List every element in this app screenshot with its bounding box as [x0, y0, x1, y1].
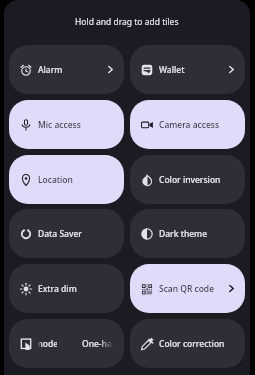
staticText: Wallet [159, 64, 226, 76]
staticText: Color inversion [159, 174, 234, 186]
button[interactable]: Wallet [130, 45, 245, 94]
button[interactable]: Data Saver [9, 209, 124, 258]
staticText: Camera access [159, 119, 234, 131]
staticText: Alarm [38, 64, 105, 76]
staticText: Scan QR code [159, 283, 226, 295]
staticText: Hold and drag to add tiles [75, 16, 179, 28]
button[interactable]: Color inversion [130, 155, 245, 204]
button[interactable]: Scan QR code [130, 264, 245, 313]
button[interactable]: Dark theme [130, 209, 245, 258]
button[interactable]: Extra dim [9, 264, 124, 313]
button[interactable]: Mic access [9, 100, 124, 149]
staticText: Dark theme [159, 228, 234, 240]
button[interactable]: Color correction [130, 319, 245, 368]
button[interactable]: Alarm [9, 45, 124, 94]
button[interactable]: Location [9, 155, 124, 204]
staticText: One-handed mode [82, 338, 113, 350]
staticText: Extra dim [38, 283, 113, 295]
staticText: Location [38, 174, 113, 186]
staticText: Data Saver [38, 228, 113, 240]
staticText: Color correction [159, 338, 234, 350]
button[interactable]: Camera access [130, 100, 245, 149]
staticText: One-handed mode [38, 338, 57, 350]
button[interactable]: One-handed mode [9, 319, 124, 368]
staticText: Mic access [38, 119, 113, 131]
